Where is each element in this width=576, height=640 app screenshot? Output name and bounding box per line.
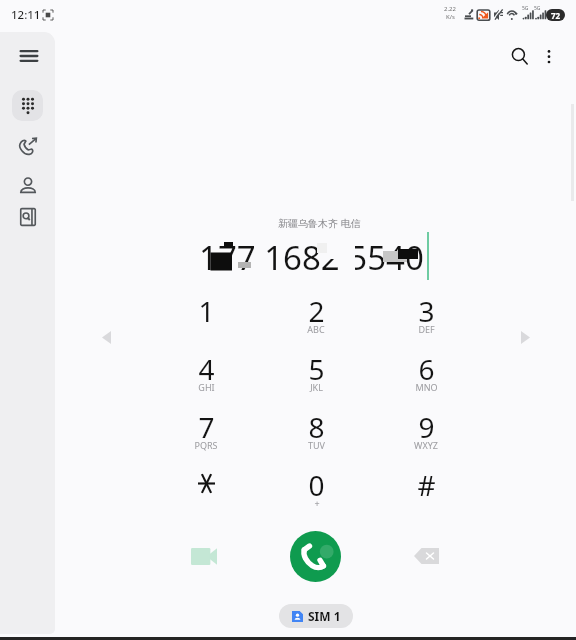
button[interactable]: Contacts — [12, 170, 43, 201]
staticText: 新疆乌鲁木齐 电信 — [278, 216, 361, 230]
button[interactable]: 6 — [371, 350, 481, 408]
button[interactable]: 2 — [261, 292, 371, 350]
staticText: 7 — [198, 408, 215, 446]
staticText: 8 — [308, 408, 325, 446]
button[interactable]: 5 — [261, 350, 371, 408]
staticText: 4 — [198, 350, 215, 388]
button[interactable]: 3 — [371, 292, 481, 350]
button[interactable]: # — [371, 466, 481, 516]
staticText: 1 — [198, 292, 215, 330]
staticText: 12:11 — [11, 7, 41, 23]
button[interactable]: Delete — [408, 538, 444, 574]
button[interactable]: 1 — [151, 292, 261, 350]
staticText: DEF — [418, 323, 435, 335]
button[interactable]: Keypad — [12, 90, 43, 121]
button[interactable]: star — [151, 466, 261, 516]
staticText: GHI — [198, 381, 215, 393]
button[interactable]: Call — [290, 531, 341, 582]
staticText: 0 — [308, 466, 325, 504]
staticText: PQRS — [194, 439, 218, 451]
staticText: 5G — [534, 5, 541, 12]
staticText: K/s — [446, 13, 455, 21]
staticText: 2 — [308, 292, 325, 330]
staticText: 5G — [522, 5, 529, 12]
staticText: ABC — [307, 323, 325, 335]
staticText: 5 — [308, 350, 325, 388]
staticText: + — [314, 497, 320, 509]
staticText: WXYZ — [414, 439, 438, 451]
staticText: 6 — [418, 350, 435, 388]
button[interactable]: Video call — [186, 538, 222, 574]
staticText: JKL — [310, 381, 323, 393]
button[interactable]: 7 — [151, 408, 261, 466]
staticText: 3 — [418, 292, 435, 330]
button[interactable]: Directory — [12, 201, 43, 232]
button[interactable]: 9 — [371, 408, 481, 466]
staticText: 2.22 — [444, 5, 456, 13]
staticText: # — [417, 466, 436, 504]
staticText: 9 — [418, 408, 435, 446]
button[interactable]: 0 — [261, 466, 371, 516]
button[interactable]: Recents — [12, 130, 43, 161]
button[interactable]: 177 1682 5540 — [55, 235, 576, 275]
staticText: MNO — [415, 381, 438, 393]
staticText: 177 1682 5540 — [199, 235, 424, 275]
button[interactable]: More options — [534, 42, 563, 71]
button[interactable]: 4 — [151, 350, 261, 408]
button[interactable]: Search — [505, 42, 534, 71]
staticText: 72 — [551, 10, 561, 21]
button[interactable]: 8 — [261, 408, 371, 466]
button[interactable]: Menu — [12, 40, 43, 71]
button[interactable]: SIM 1 — [279, 604, 353, 628]
staticText: TUV — [308, 439, 325, 451]
staticText: SIM 1 — [308, 608, 341, 624]
